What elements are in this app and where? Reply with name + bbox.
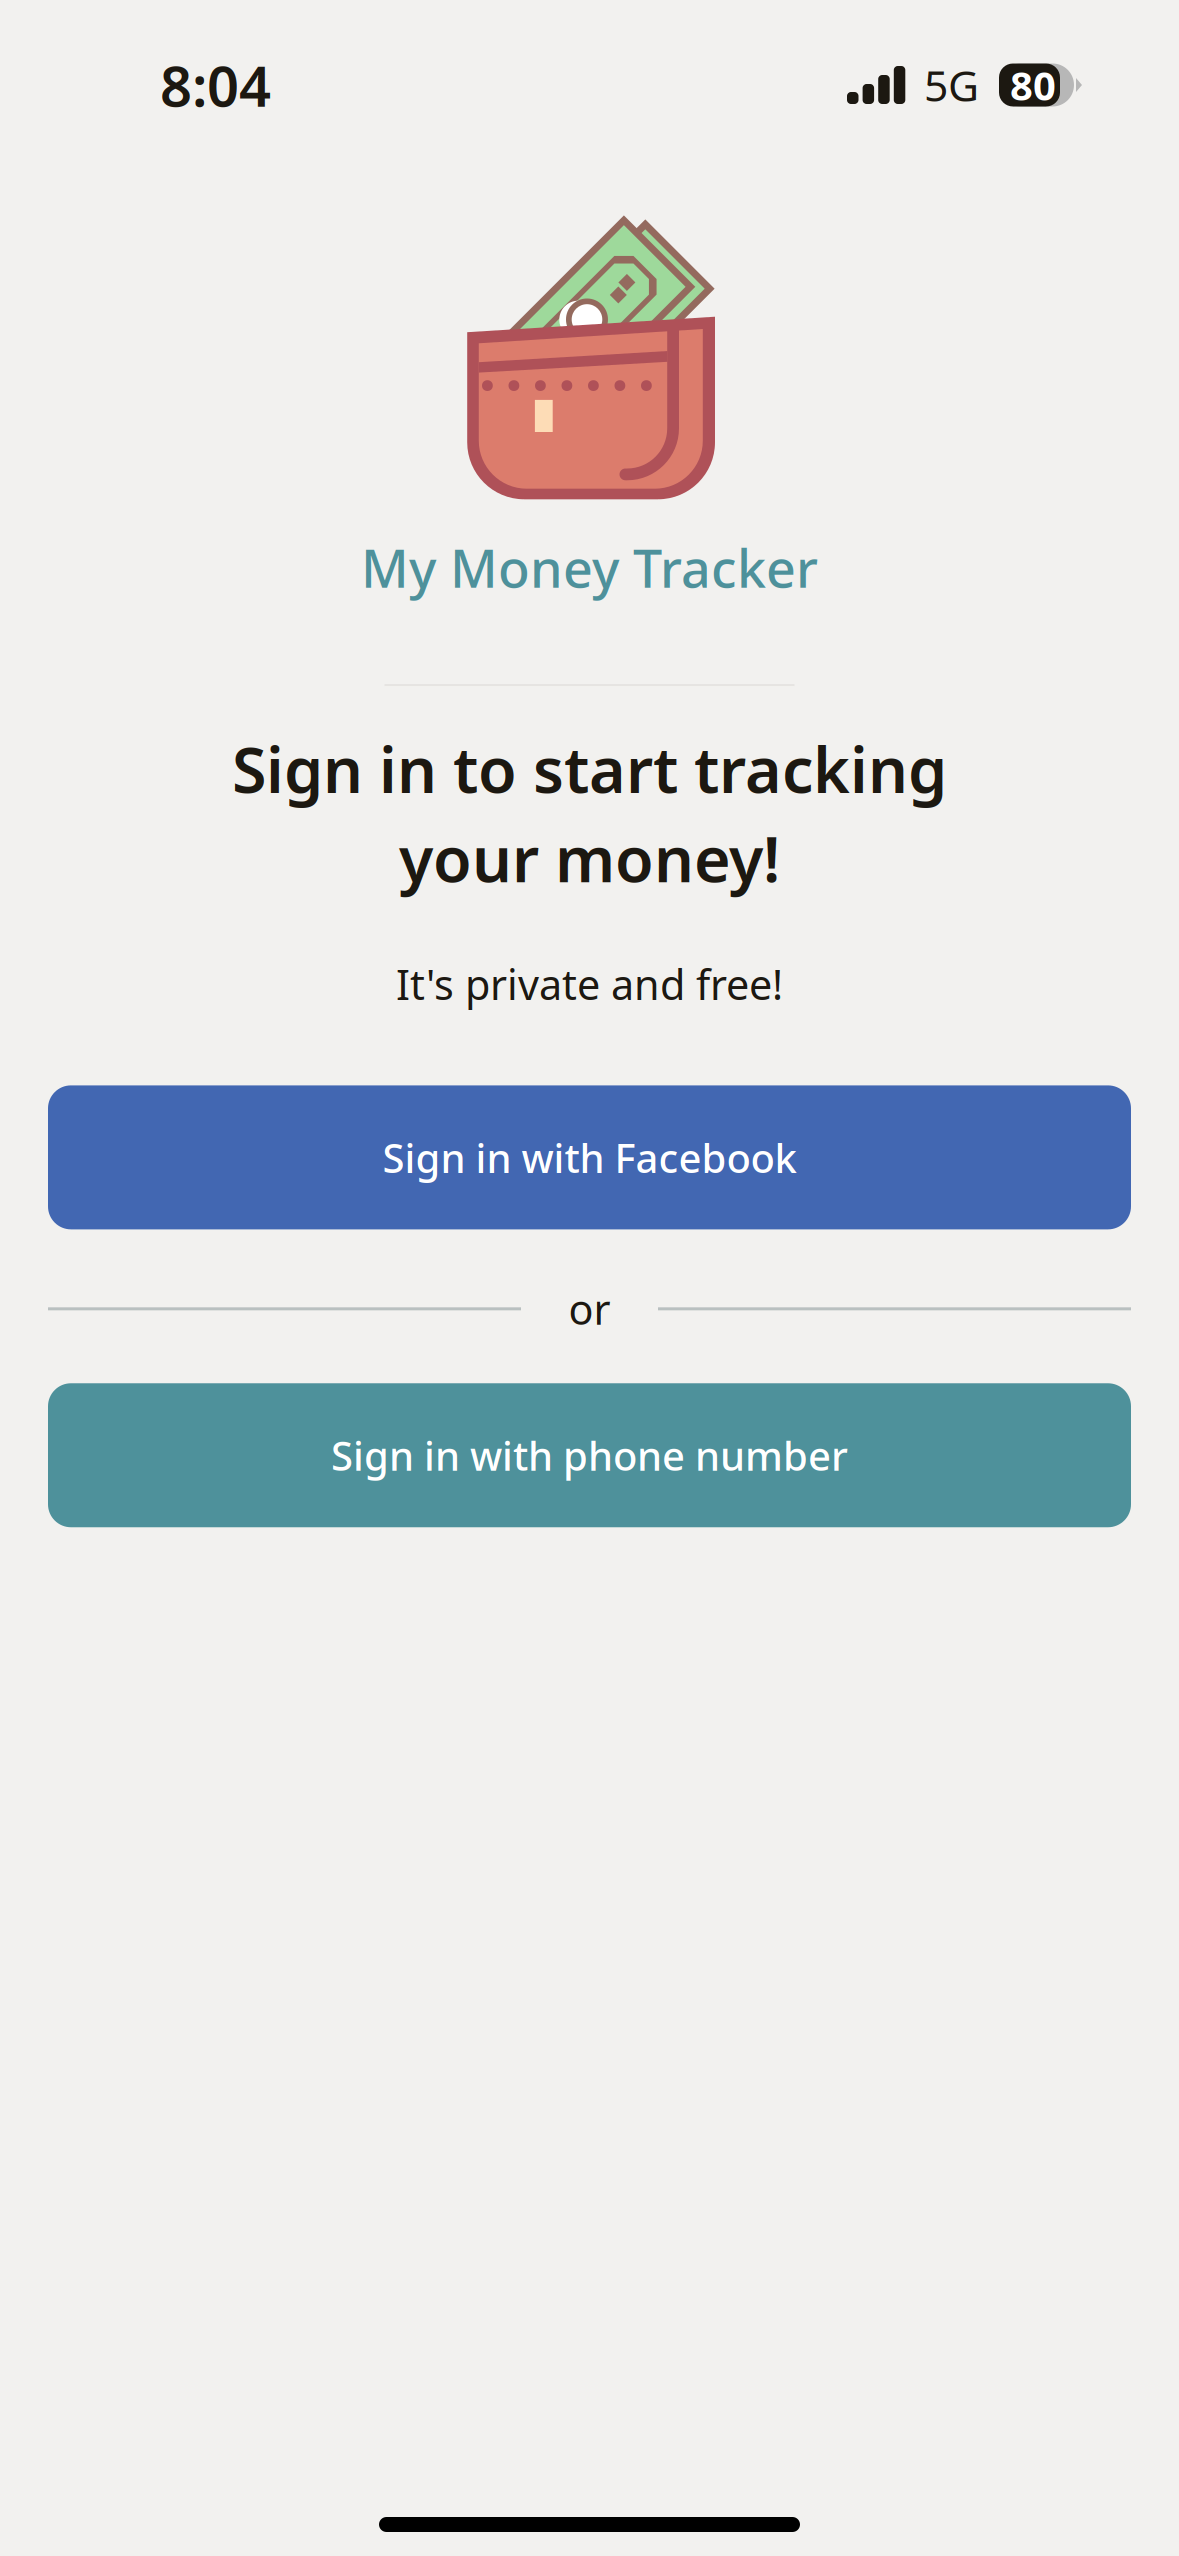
staticText: 8:04	[160, 48, 271, 122]
staticText: My Money Tracker	[361, 533, 818, 602]
staticText: 5G	[924, 57, 979, 113]
staticText: Sign in with phone number	[331, 1429, 848, 1482]
staticText: Sign in to start tracking	[232, 727, 947, 810]
button[interactable]: Sign in with Facebook	[48, 1085, 1131, 1229]
button[interactable]: Sign in with phone number	[48, 1383, 1131, 1527]
staticText: or	[568, 1281, 610, 1336]
staticText: 80	[1010, 58, 1056, 111]
staticText: Sign in with Facebook	[382, 1131, 796, 1184]
staticText: It's private and free!	[396, 956, 783, 1011]
staticText: your money!	[399, 816, 780, 899]
